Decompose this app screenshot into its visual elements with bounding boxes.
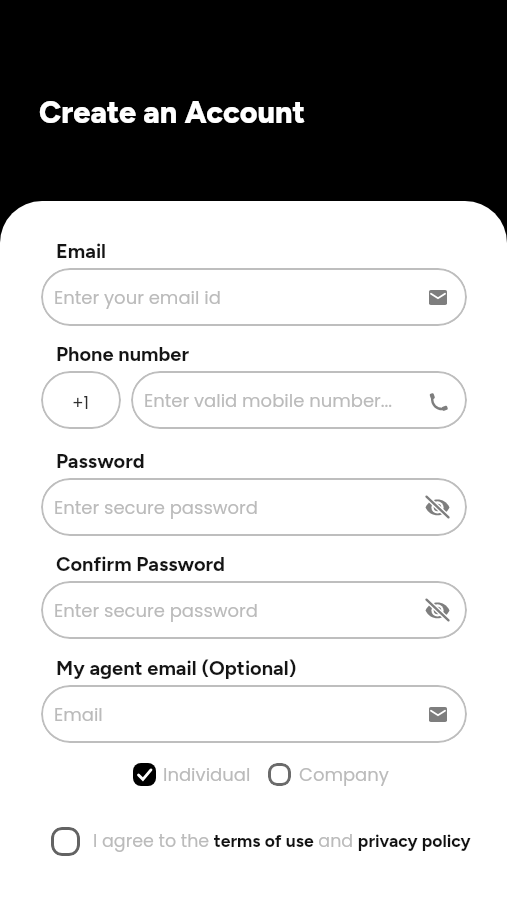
staticText: Enter valid mobile number... [144,388,393,413]
button[interactable]: Enter your email id [41,268,467,326]
staticText: Enter secure password [54,598,258,623]
button[interactable]: Company [268,762,389,787]
staticText: I agree to the terms of use and privacy … [93,829,471,854]
other: Email [429,290,447,305]
button[interactable]: Email [41,685,467,743]
staticText: Create an Account [39,94,306,131]
staticText: Phone number [56,342,190,366]
staticText: Confirm Password [56,552,225,576]
button[interactable]: Enter valid mobile number... [131,371,467,429]
other: Show password [425,496,450,518]
button[interactable]: Individual [133,762,251,787]
button[interactable]: I agree to the terms of use and privacy … [51,827,471,856]
other: Agent email [429,707,447,722]
staticText: My agent email (Optional) [56,656,297,680]
staticText: Company [299,762,389,787]
staticText: Email [56,239,107,263]
staticText: Enter secure password [54,495,258,520]
staticText: Enter your email id [54,285,221,310]
staticText: Email [54,702,103,727]
other: Show confirm password [425,599,450,621]
button[interactable]: Enter secure password [41,581,467,639]
other: Phone [429,393,448,412]
staticText: Individual [163,762,251,787]
button[interactable]: Enter secure password [41,478,467,536]
staticText: Password [56,449,145,473]
staticText: +1 [72,391,90,415]
button[interactable]: +1 [41,371,121,429]
